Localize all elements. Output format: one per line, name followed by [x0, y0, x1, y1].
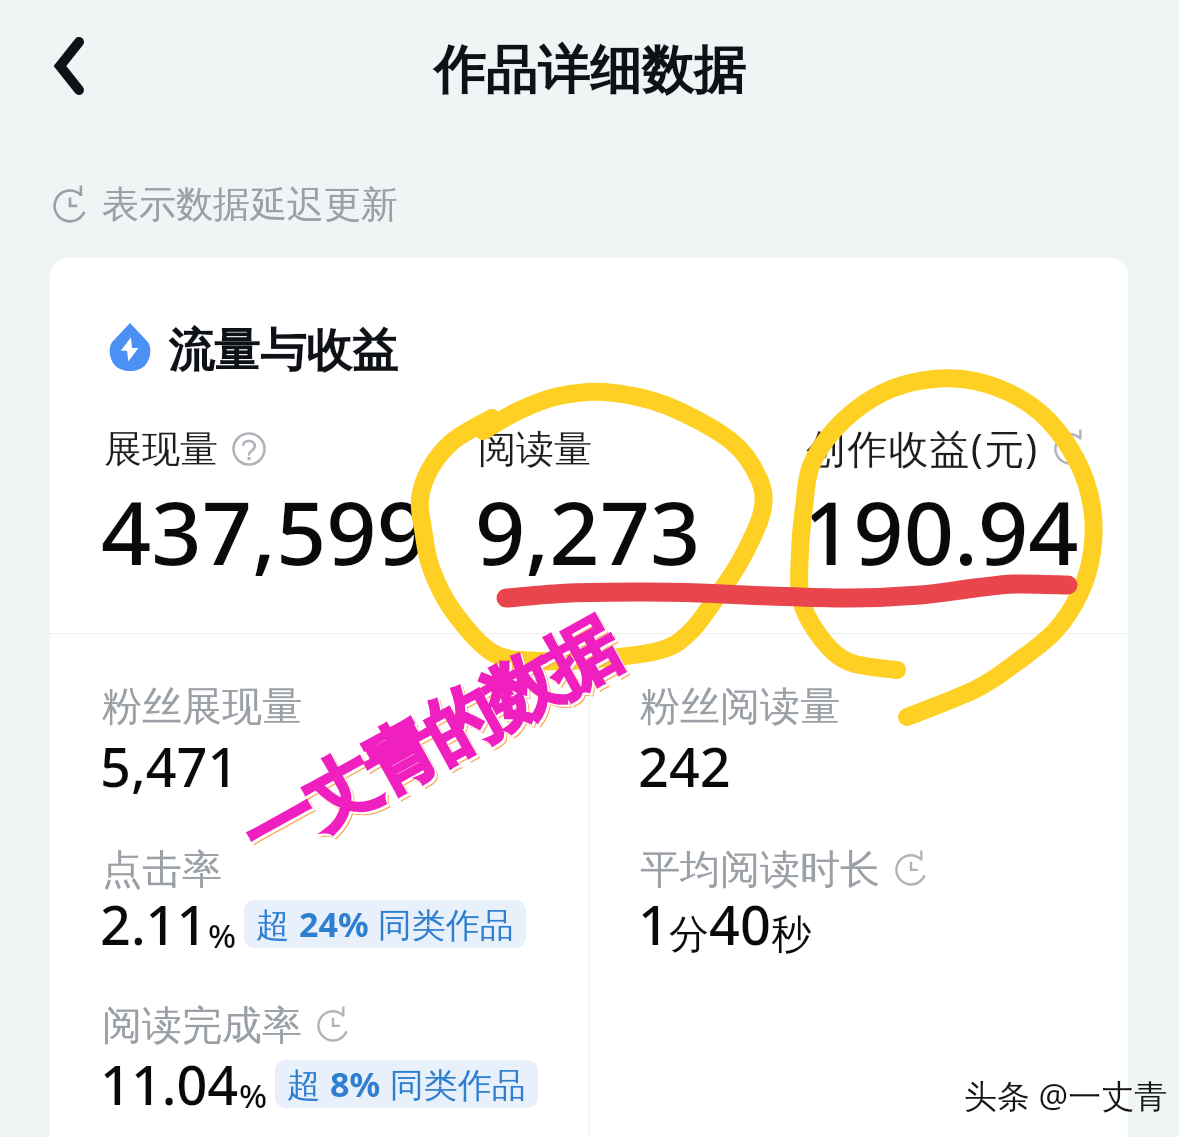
- staticText: 一丈青的数据: [231, 604, 637, 885]
- staticText: 190.94: [803, 471, 1079, 591]
- staticText: 流量与收益: [168, 322, 398, 380]
- staticText: 头条 @一丈青: [964, 1073, 1168, 1118]
- staticText: 点击率: [102, 844, 222, 894]
- staticText: %: [239, 1073, 268, 1118]
- button[interactable]: 超: [275, 1060, 538, 1108]
- button[interactable]: Back: [26, 28, 106, 108]
- staticText: 8%: [330, 1061, 381, 1107]
- button[interactable]: Delayed data: [316, 1008, 350, 1042]
- button[interactable]: Delayed data: [1053, 431, 1087, 465]
- staticText: 展现量: [104, 425, 218, 473]
- staticText: %: [208, 913, 237, 958]
- staticText: 平均阅读时长: [640, 844, 880, 894]
- staticText: 阅读完成率: [102, 1000, 302, 1050]
- staticText: 一丈青的数据: [230, 603, 636, 884]
- staticText: 创作收益(元): [806, 420, 1039, 475]
- button[interactable]: 超: [244, 900, 526, 948]
- button[interactable]: Delayed data: [894, 852, 928, 886]
- staticText: 40: [709, 887, 771, 961]
- staticText: 表示数据延迟更新: [102, 181, 398, 228]
- staticText: 437,599: [101, 471, 428, 591]
- button[interactable]: About this metric: [232, 432, 266, 466]
- staticText: 1: [638, 887, 669, 961]
- staticText: 一丈青的数据: [228, 601, 634, 882]
- staticText: 242: [638, 729, 731, 803]
- staticText: 同类作品: [381, 1061, 526, 1107]
- staticText: 同类作品: [369, 901, 514, 947]
- staticText: 9,273: [475, 471, 701, 591]
- staticText: 超: [256, 901, 299, 947]
- staticText: 作品详细数据: [0, 38, 1179, 104]
- staticText: 分: [669, 909, 709, 959]
- staticText: 粉丝展现量: [102, 681, 302, 731]
- staticText: 阅读量: [478, 425, 592, 473]
- staticText: 2.11: [100, 887, 208, 961]
- staticText: 5,471: [100, 729, 239, 803]
- staticText: 秒: [771, 909, 811, 959]
- staticText: 粉丝阅读量: [640, 681, 840, 731]
- button[interactable]: 表示数据延迟更新: [52, 181, 398, 228]
- staticText: 24%: [299, 901, 369, 947]
- staticText: 超: [287, 1061, 330, 1107]
- staticText: 11.04: [100, 1047, 239, 1121]
